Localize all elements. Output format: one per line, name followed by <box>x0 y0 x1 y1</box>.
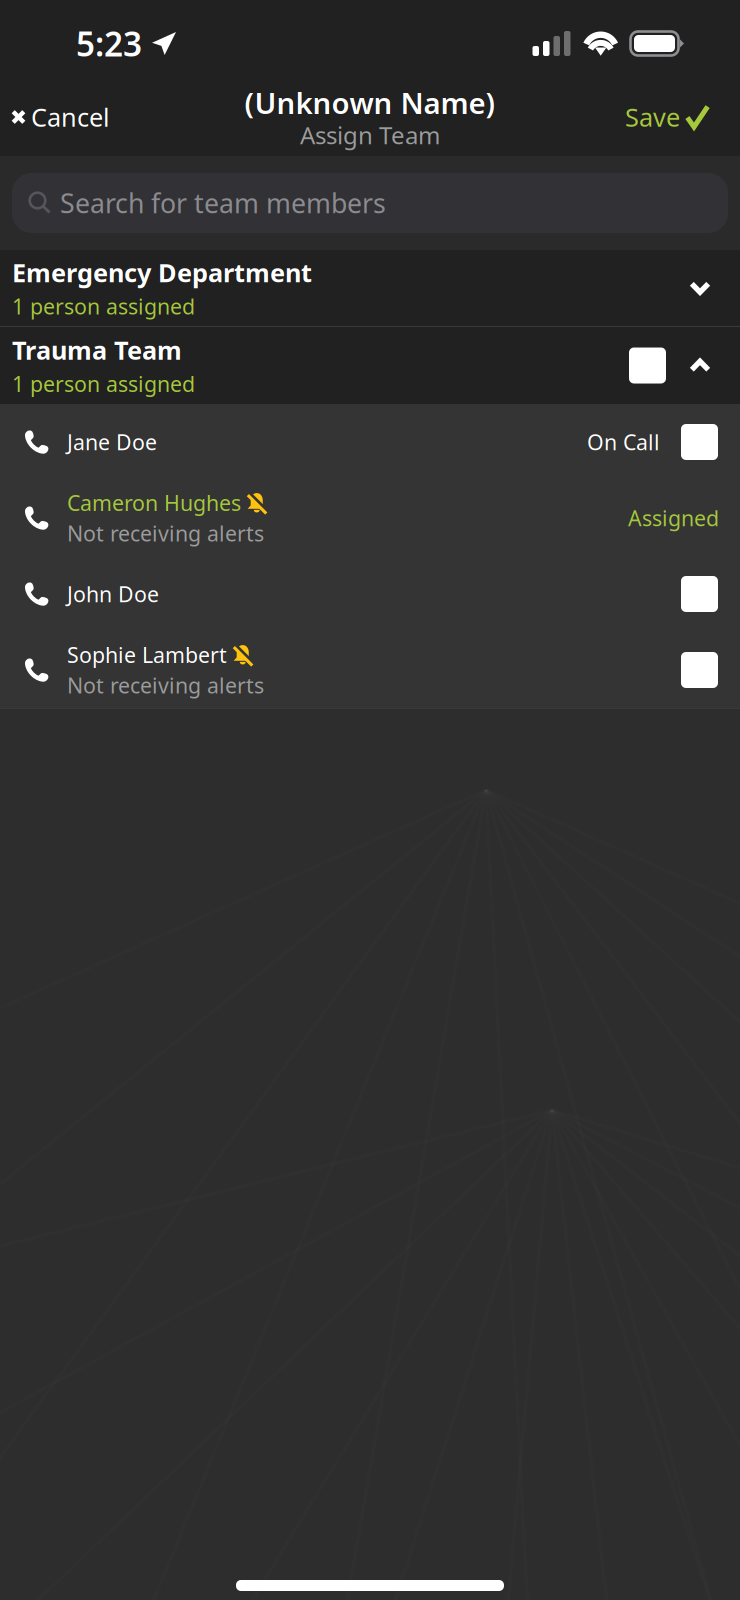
staticText: 1 person assigned <box>12 370 195 398</box>
staticText: Save <box>625 100 680 134</box>
staticText: John Doe <box>67 580 159 608</box>
staticText: Sophie Lambert <box>67 641 227 669</box>
staticText: 1 person assigned <box>12 292 195 320</box>
staticText: Assigned <box>628 504 719 532</box>
button[interactable]: Sophie Lambert <box>0 632 740 708</box>
staticText: (Unknown Name) <box>244 83 495 122</box>
staticText: Jane Doe <box>67 428 157 456</box>
staticText: Assign Team <box>300 119 440 151</box>
staticText: Trauma Team <box>12 333 182 367</box>
staticText: Not receiving alerts <box>67 519 264 547</box>
button[interactable]: Cancel <box>0 90 124 144</box>
button[interactable]: Emergency Department <box>0 250 740 326</box>
button[interactable]: Save <box>611 90 740 144</box>
button[interactable]: John Doe <box>0 556 740 632</box>
staticText: On Call <box>587 428 660 456</box>
staticText: Emergency Department <box>12 255 312 289</box>
button[interactable]: Cameron Hughes <box>0 480 740 556</box>
button[interactable]: Trauma Team <box>0 327 740 404</box>
staticText: Search for team members <box>60 185 386 221</box>
staticText: Cancel <box>31 100 110 134</box>
staticText: Cameron Hughes <box>67 489 241 517</box>
button[interactable]: Jane Doe <box>0 404 740 480</box>
staticText: 5:23 <box>76 21 142 66</box>
staticText: Not receiving alerts <box>67 671 264 699</box>
button[interactable]: Search for team members <box>12 173 728 233</box>
